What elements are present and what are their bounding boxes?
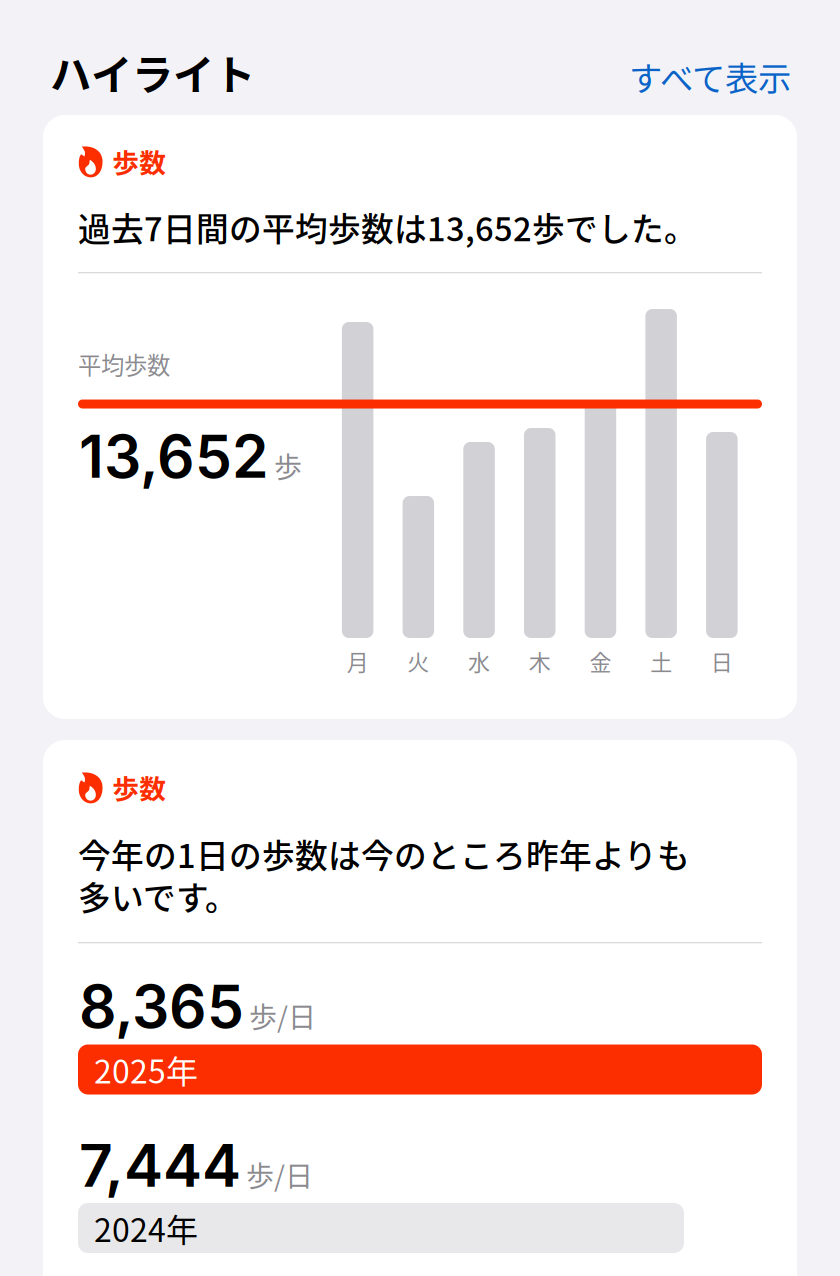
staticText: 歩数 (112, 142, 166, 180)
staticText: 歩/日 (246, 1154, 313, 1195)
staticText: 8,365 (79, 971, 244, 1042)
staticText: 歩/日 (249, 995, 316, 1036)
staticText: 歩数 (112, 768, 166, 806)
staticText: 13,652 (79, 421, 269, 492)
staticText: 2024年 (94, 1205, 198, 1251)
staticText: 歩 (274, 445, 302, 486)
staticText: 火 (407, 645, 429, 677)
staticText: すべて表示 (629, 52, 791, 100)
staticText: 水 (468, 645, 490, 677)
staticText: 金 (589, 645, 611, 677)
staticText: 平均歩数 (78, 347, 170, 381)
staticText: 過去7日間の平均歩数は13,652歩でした。 (78, 203, 697, 251)
staticText: 月 (347, 645, 369, 677)
staticText: 今年の1日の歩数は今のところ昨年よりも多いです。 (78, 830, 690, 920)
staticText: 木 (529, 645, 551, 677)
staticText: 7,444 (79, 1130, 241, 1201)
staticText: 土 (650, 645, 672, 677)
staticText: 日 (711, 645, 733, 677)
staticText: ハイライト (50, 42, 255, 102)
staticText: 2025年 (94, 1046, 198, 1093)
button[interactable]: すべて表示 (605, 42, 805, 110)
